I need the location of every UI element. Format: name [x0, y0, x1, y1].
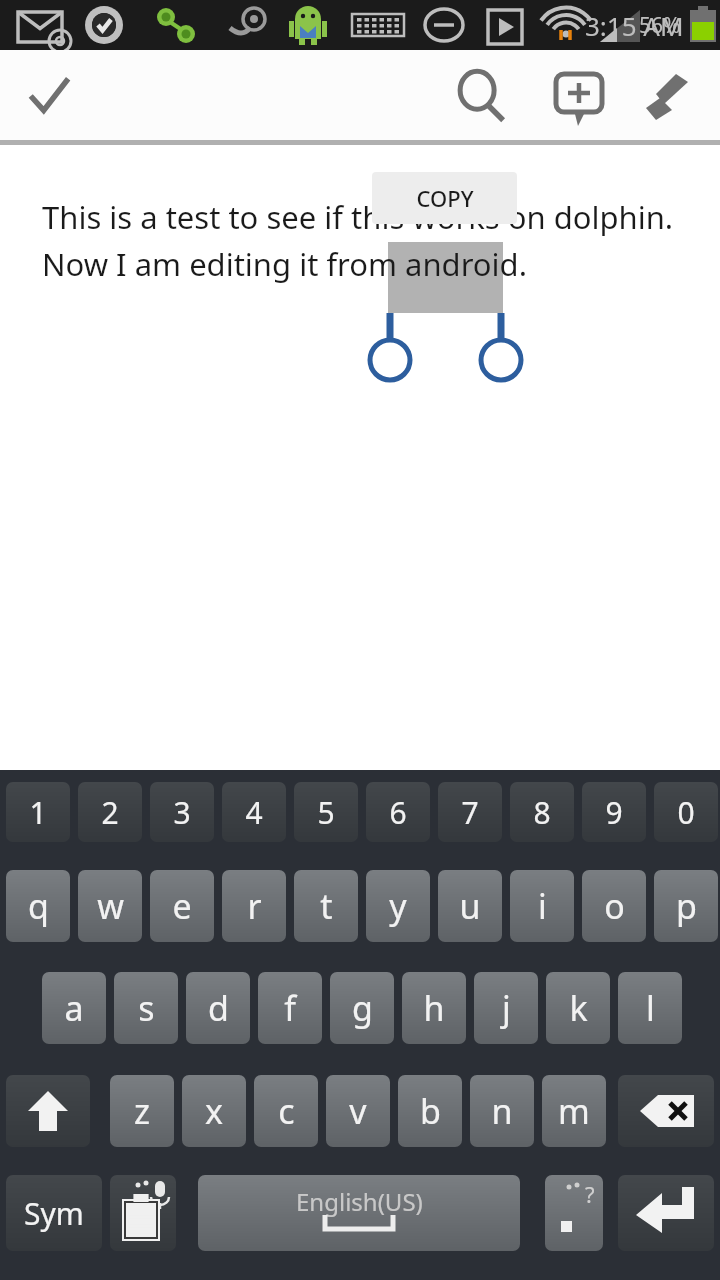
button[interactable]: x	[182, 1075, 246, 1147]
staticText: 1	[29, 792, 47, 833]
staticText: 8	[533, 792, 551, 833]
staticText: COPY	[416, 183, 474, 213]
button[interactable]: o	[582, 870, 646, 942]
staticText: 7	[461, 792, 479, 833]
button[interactable]: l	[618, 972, 682, 1044]
staticText: 5	[317, 792, 335, 833]
staticText: m	[558, 1088, 590, 1134]
staticText: Now I am editing it from android.	[42, 243, 527, 285]
button[interactable]: p	[654, 870, 718, 942]
staticText: p	[676, 883, 697, 929]
staticText: w	[97, 883, 124, 929]
staticText: d	[208, 985, 229, 1031]
button[interactable]: u	[438, 870, 502, 942]
staticText: This is a test to see if this works on d…	[42, 196, 674, 238]
button[interactable]: j	[474, 972, 538, 1044]
button[interactable]: Backspace	[618, 1075, 714, 1147]
button[interactable]: k	[546, 972, 610, 1044]
button[interactable]: Sym	[6, 1175, 102, 1251]
button[interactable]: i	[510, 870, 574, 942]
button[interactable]: Enter	[618, 1175, 714, 1251]
staticText: ?	[585, 1179, 595, 1209]
staticText: b	[420, 1088, 441, 1134]
button[interactable]: z	[110, 1075, 174, 1147]
staticText: 2	[101, 792, 119, 833]
button[interactable]: 8	[510, 782, 574, 842]
button[interactable]: 9	[582, 782, 646, 842]
staticText: English(US)	[296, 1185, 423, 1218]
button[interactable]: r	[222, 870, 286, 942]
button[interactable]: a	[42, 972, 106, 1044]
staticText: 3:15 AM	[585, 8, 684, 43]
button[interactable]: 5	[294, 782, 358, 842]
staticText: g	[352, 985, 373, 1031]
staticText: r	[247, 883, 262, 929]
button[interactable]: y	[366, 870, 430, 942]
staticText: Sym	[24, 1193, 84, 1234]
staticText: x	[205, 1088, 223, 1134]
button[interactable]: 7	[438, 782, 502, 842]
staticText: z	[134, 1088, 150, 1134]
staticText: 6	[389, 792, 407, 833]
staticText: v	[349, 1088, 367, 1134]
button[interactable]: f	[258, 972, 322, 1044]
staticText: o	[604, 883, 625, 929]
button[interactable]: d	[186, 972, 250, 1044]
button[interactable]: s	[114, 972, 178, 1044]
button[interactable]: h	[402, 972, 466, 1044]
staticText: t	[320, 883, 333, 929]
button[interactable]: Done	[12, 60, 84, 132]
staticText: 3	[173, 792, 191, 833]
button[interactable]: v	[326, 1075, 390, 1147]
button[interactable]: e	[150, 870, 214, 942]
staticText: c	[278, 1088, 295, 1134]
staticText: 0	[677, 792, 695, 833]
button[interactable]: English(US)	[198, 1175, 520, 1251]
staticText: s	[138, 985, 155, 1031]
staticText: i	[538, 883, 547, 929]
button[interactable]: w	[78, 870, 142, 942]
button[interactable]: c	[254, 1075, 318, 1147]
button[interactable]: 0	[654, 782, 718, 842]
staticText: h	[423, 985, 445, 1031]
button[interactable]: g	[330, 972, 394, 1044]
staticText: 4	[245, 792, 263, 833]
staticText: q	[28, 883, 49, 929]
staticText: y	[389, 883, 407, 929]
staticText: e	[172, 883, 192, 929]
button[interactable]: Add note	[540, 60, 612, 132]
button[interactable]: 4	[222, 782, 286, 842]
button[interactable]: m	[542, 1075, 606, 1147]
button[interactable]: 1	[6, 782, 70, 842]
staticText: 9	[605, 792, 623, 833]
staticText: l	[646, 985, 655, 1031]
staticText: n	[491, 1088, 513, 1134]
staticText: u	[459, 883, 481, 929]
button[interactable]: Clipboard and voice input	[110, 1175, 176, 1251]
staticText: k	[569, 985, 588, 1031]
staticText: j	[502, 985, 511, 1031]
button[interactable]: b	[398, 1075, 462, 1147]
button[interactable]: 2	[78, 782, 142, 842]
button[interactable]: Brush	[638, 60, 710, 132]
staticText: 56%	[639, 11, 681, 40]
button[interactable]: Search	[444, 60, 516, 132]
button[interactable]: t	[294, 870, 358, 942]
button[interactable]: 6	[366, 782, 430, 842]
button[interactable]: Shift	[6, 1075, 90, 1147]
button[interactable]: Period	[545, 1175, 603, 1251]
button[interactable]: 3	[150, 782, 214, 842]
staticText: a	[64, 985, 84, 1031]
button[interactable]: q	[6, 870, 70, 942]
staticText: f	[284, 985, 296, 1031]
button[interactable]: n	[470, 1075, 534, 1147]
button[interactable]: COPY	[372, 172, 517, 224]
